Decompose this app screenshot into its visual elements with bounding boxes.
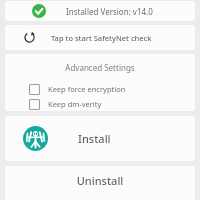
staticText: Keep force encryption bbox=[48, 84, 126, 94]
button[interactable]: Keep dm-verity bbox=[5, 97, 195, 111]
staticText: Advanced Settings bbox=[5, 62, 195, 73]
staticText: Uninstall bbox=[5, 173, 195, 188]
staticText: Tap to start SafetyNet check bbox=[51, 33, 152, 43]
staticText: Install bbox=[78, 131, 111, 146]
button[interactable]: Installed Version: v14.0 bbox=[5, 1, 195, 21]
other: Start SafetyNet check bbox=[23, 31, 36, 44]
staticText: Keep dm-verity bbox=[48, 99, 102, 109]
button[interactable]: Start SafetyNet check bbox=[5, 25, 195, 50]
button[interactable]: Uninstall bbox=[5, 166, 195, 200]
button[interactable]: Install bbox=[5, 116, 195, 161]
staticText: Installed Version: v14.0 bbox=[66, 6, 153, 17]
button[interactable]: Keep force encryption bbox=[5, 81, 195, 97]
